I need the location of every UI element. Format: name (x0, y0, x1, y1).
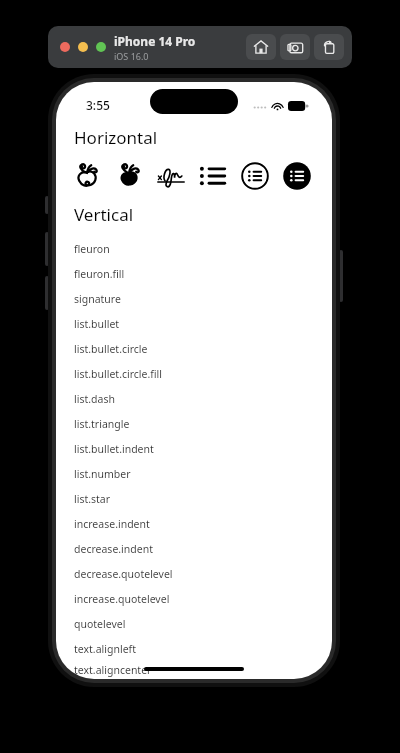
staticText: increase.quotelevel (74, 592, 170, 606)
staticText: decrease.quotelevel (74, 567, 173, 581)
staticText: list.bullet.indent (74, 442, 154, 456)
staticText: 3:55 (86, 97, 110, 113)
staticText: Vertical (74, 203, 134, 226)
staticText: list.triangle (74, 417, 130, 431)
button[interactable]: decrease.quotelevel (56, 561, 332, 586)
button[interactable] (60, 42, 70, 52)
button[interactable]: list bullet circle (238, 159, 272, 193)
staticText: decrease.indent (74, 542, 153, 556)
button[interactable]: list.bullet (56, 311, 332, 336)
button[interactable]: fleuron (56, 236, 332, 261)
staticText: increase.indent (74, 517, 150, 531)
button[interactable]: list.star (56, 486, 332, 511)
staticText: list.bullet (74, 317, 120, 331)
button[interactable]: list bullet (196, 159, 230, 193)
button[interactable]: quotelevel (56, 611, 332, 636)
staticText: signature (74, 292, 121, 306)
staticText: fleuron.fill (74, 267, 125, 281)
button[interactable]: Home (246, 34, 276, 60)
button[interactable] (96, 42, 106, 52)
staticText: iOS 16.0 (114, 50, 149, 62)
staticText: list.bullet.circle (74, 342, 148, 356)
staticText: Horizontal (74, 126, 158, 149)
staticText: list.dash (74, 392, 115, 406)
button[interactable]: text.alignleft (56, 636, 332, 661)
button[interactable]: fleuron (70, 159, 104, 193)
button[interactable]: signature (56, 286, 332, 311)
staticText: iPhone 14 Pro (114, 33, 196, 49)
staticText: text.aligncenter (74, 663, 152, 677)
button[interactable] (78, 42, 88, 52)
button[interactable]: list.triangle (56, 411, 332, 436)
staticText: list.bullet.circle.fill (74, 367, 163, 381)
staticText: text.alignleft (74, 642, 136, 656)
staticText: list.number (74, 467, 131, 481)
button[interactable]: Rotate (314, 34, 344, 60)
button[interactable]: list.bullet.indent (56, 436, 332, 461)
button[interactable]: list.number (56, 461, 332, 486)
staticText: fleuron (74, 242, 110, 256)
button[interactable]: text.aligncenter (56, 661, 332, 679)
button[interactable]: fleuron.fill (56, 261, 332, 286)
button[interactable]: list bullet circle fill (280, 159, 314, 193)
button[interactable]: increase.indent (56, 511, 332, 536)
button[interactable]: list.dash (56, 386, 332, 411)
button[interactable]: signature (154, 159, 188, 193)
button[interactable]: increase.quotelevel (56, 586, 332, 611)
button[interactable]: list.bullet.circle.fill (56, 361, 332, 386)
button[interactable]: fleuron fill (112, 159, 146, 193)
button[interactable]: Screenshot (280, 34, 310, 60)
button[interactable]: decrease.indent (56, 536, 332, 561)
staticText: quotelevel (74, 617, 126, 631)
button[interactable]: list.bullet.circle (56, 336, 332, 361)
staticText: list.star (74, 492, 111, 506)
